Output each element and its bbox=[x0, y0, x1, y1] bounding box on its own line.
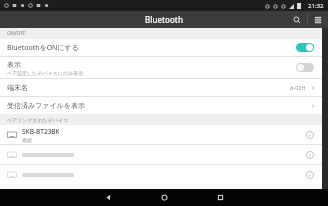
staticText: 受信済みファイルを表示 bbox=[7, 101, 310, 110]
button[interactable]: Home bbox=[147, 189, 181, 206]
button[interactable]: Device settings bbox=[303, 168, 317, 182]
staticText: 端末名 bbox=[7, 83, 290, 92]
button[interactable]: Recent apps bbox=[203, 189, 237, 206]
button[interactable]: SKB-BT23BK bbox=[0, 125, 322, 144]
button[interactable]: Device settings bbox=[303, 148, 317, 162]
button[interactable]: BluetoothをONにする bbox=[0, 39, 322, 56]
staticText: ペア設定したデバイスにのみ表示 bbox=[7, 70, 84, 76]
button[interactable]: Search bbox=[287, 11, 307, 28]
button[interactable]: Device settings bbox=[0, 165, 322, 184]
staticText: d-02H bbox=[290, 84, 306, 91]
button[interactable]: Device settings bbox=[0, 145, 322, 164]
button[interactable]: Device settings bbox=[303, 128, 317, 142]
staticText: 21:32 bbox=[308, 2, 324, 10]
button[interactable]: Back bbox=[91, 189, 125, 206]
staticText: ON/OFF bbox=[7, 30, 26, 37]
staticText: BluetoothをONにする bbox=[7, 43, 79, 53]
button[interactable]: 端末名 bbox=[0, 79, 322, 96]
button[interactable]: 表示 bbox=[0, 57, 322, 78]
staticText: 接続 bbox=[22, 137, 32, 143]
staticText: Bluetooth bbox=[145, 14, 183, 25]
staticText: SKB-BT23BK bbox=[22, 127, 60, 136]
button[interactable]: More options bbox=[308, 11, 328, 28]
staticText: ペアリングされたデバイス bbox=[7, 117, 69, 123]
staticText: 表示 bbox=[7, 60, 21, 69]
button[interactable]: 受信済みファイルを表示 bbox=[0, 97, 322, 114]
